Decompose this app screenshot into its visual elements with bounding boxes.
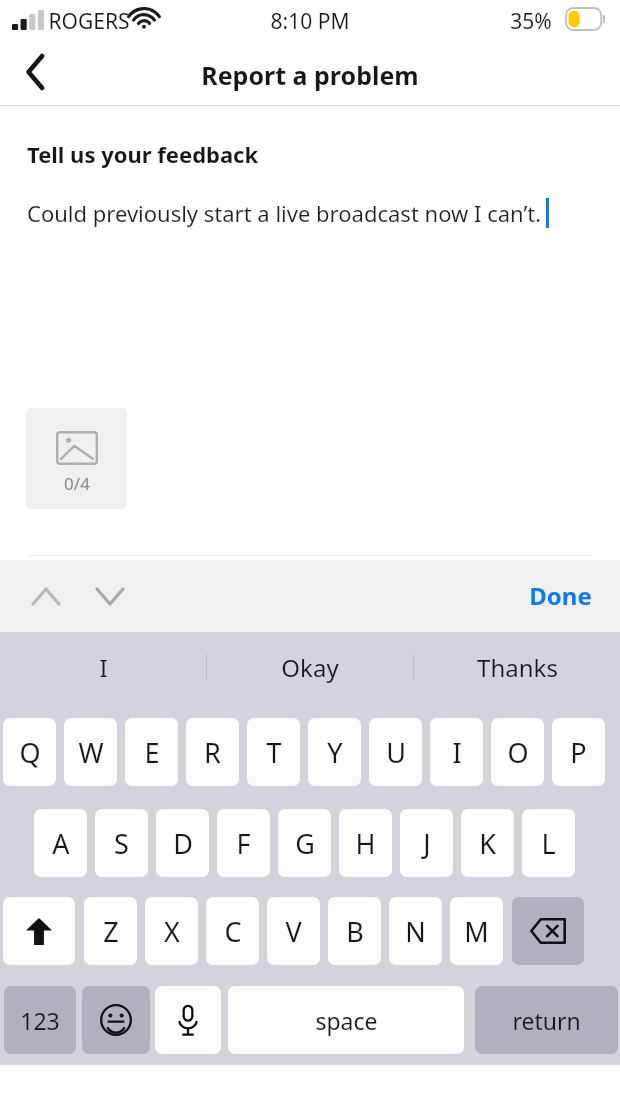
button[interactable]: C [206,897,259,965]
staticText: Tell us your feedback [27,139,259,169]
staticText: M [464,913,489,950]
button[interactable]: V [267,897,320,965]
button[interactable]: Dictation [155,986,221,1054]
button[interactable]: S [95,809,148,877]
staticText: D [173,825,193,862]
staticText: P [570,734,587,771]
staticText: K [479,825,496,862]
button[interactable]: I [430,718,483,786]
staticText: E [144,734,160,771]
button[interactable]: space [228,986,464,1054]
staticText: 123 [20,1005,60,1036]
staticText: C [224,913,242,950]
button[interactable]: X [145,897,198,965]
button[interactable]: Q [3,718,56,786]
staticText: return [512,1005,581,1036]
staticText: O [507,734,529,771]
button[interactable]: J [400,809,453,877]
staticText: W [78,734,104,771]
button[interactable]: Emoji [82,986,150,1054]
staticText: I [452,734,462,771]
button[interactable]: O [491,718,544,786]
button[interactable]: Back [8,44,64,100]
button[interactable]: Z [84,897,137,965]
staticText: 8:10 PM [0,7,620,36]
staticText: N [405,913,426,950]
button[interactable]: 123 [4,986,76,1054]
button[interactable]: return [475,986,618,1054]
staticText: F [236,825,251,862]
staticText: Thanks [477,651,558,684]
button[interactable]: Add photos [26,408,127,509]
button[interactable]: Y [308,718,361,786]
button[interactable]: K [461,809,514,877]
staticText: S [114,825,129,862]
button[interactable]: Done [516,570,604,620]
staticText: V [285,913,302,950]
button[interactable]: Thanks [414,632,620,702]
button[interactable]: Previous field [22,574,70,618]
button[interactable]: I [0,632,206,702]
button[interactable]: T [247,718,300,786]
staticText: space [315,1005,378,1036]
staticText: J [423,825,431,862]
staticText: I [99,651,108,684]
button[interactable]: W [64,718,117,786]
staticText: Y [327,734,343,771]
button[interactable]: Next field [86,574,134,618]
staticText: H [355,825,376,862]
staticText: Done [529,579,592,612]
staticText: R [204,734,221,771]
button[interactable]: Okay [207,632,413,702]
button[interactable]: F [217,809,270,877]
staticText: Z [103,913,119,950]
button[interactable]: P [552,718,605,786]
button[interactable]: N [389,897,442,965]
staticText: 35% [510,7,552,36]
button[interactable]: Shift [3,897,75,965]
staticText: ROGERS [48,7,130,36]
staticText: T [266,734,282,771]
staticText: U [386,734,406,771]
button[interactable]: U [369,718,422,786]
staticText: Could previously start a live broadcast … [27,198,542,228]
staticText: X [164,913,180,950]
staticText: B [346,913,364,950]
button[interactable]: B [328,897,381,965]
button[interactable]: E [125,718,178,786]
staticText: Report a problem [0,58,620,92]
button[interactable]: H [339,809,392,877]
button[interactable]: M [450,897,503,965]
staticText: 0/4 [64,472,90,495]
staticText: A [52,825,70,862]
button[interactable]: A [34,809,87,877]
button[interactable]: L [522,809,575,877]
button[interactable]: G [278,809,331,877]
staticText: Okay [281,651,339,684]
staticText: Q [19,734,41,771]
staticText: L [541,825,556,862]
staticText: G [295,825,315,862]
button[interactable]: R [186,718,239,786]
button[interactable]: D [156,809,209,877]
button[interactable]: Backspace [512,897,584,965]
